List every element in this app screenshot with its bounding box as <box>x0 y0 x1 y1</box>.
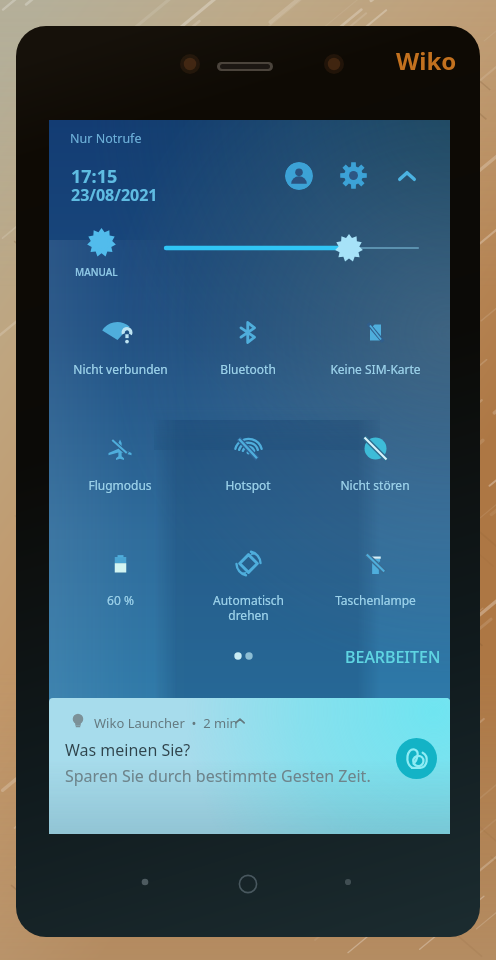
button[interactable]: Flugmodus <box>65 436 175 493</box>
staticText: Nicht stören <box>340 477 410 493</box>
button[interactable]: Expand notification <box>232 713 248 729</box>
button[interactable]: Hotspot <box>193 436 303 493</box>
staticText: Was meinen Sie? <box>65 739 191 761</box>
staticText: 23/08/2021 <box>71 184 158 206</box>
staticText: Nur Notrufe <box>70 130 142 147</box>
staticText: Keine SIM-Karte <box>330 361 421 377</box>
staticText: Wiko Launcher • 2 min <box>94 714 238 732</box>
staticText: BEARBEITEN <box>345 646 441 668</box>
button[interactable]: Automatisch drehen <box>193 551 303 623</box>
button[interactable]: Wiko Launcher • 2 min <box>49 698 450 834</box>
button[interactable]: BEARBEITEN <box>339 642 447 672</box>
staticText: Bluetooth <box>220 361 276 377</box>
button[interactable]: Collapse panel <box>393 162 421 190</box>
button[interactable]: User profile <box>285 162 313 190</box>
button[interactable]: Keine SIM-Karte <box>320 320 430 377</box>
button[interactable]: Nicht stören <box>320 436 430 493</box>
staticText: 60 % <box>107 592 134 608</box>
button[interactable]: Gesture tutorial <box>396 738 437 779</box>
button[interactable]: 60 % <box>65 551 175 608</box>
staticText: Nicht verbunden <box>73 361 168 377</box>
staticText: MANUAL <box>75 265 118 279</box>
button[interactable]: Taschenlampe <box>320 551 430 608</box>
button[interactable]: Bluetooth <box>193 320 303 377</box>
button[interactable]: Nicht verbunden <box>65 320 175 377</box>
staticText: 17:15 <box>71 164 118 189</box>
staticText: Flugmodus <box>88 477 152 493</box>
staticText: Wiko <box>396 44 457 77</box>
staticText: Hotspot <box>225 477 271 493</box>
staticText: Sparen Sie durch bestimmte Gesten Zeit. <box>65 765 371 787</box>
button[interactable]: Settings <box>340 162 367 189</box>
staticText: Automatisch drehen <box>213 592 284 623</box>
staticText: Taschenlampe <box>335 592 416 608</box>
